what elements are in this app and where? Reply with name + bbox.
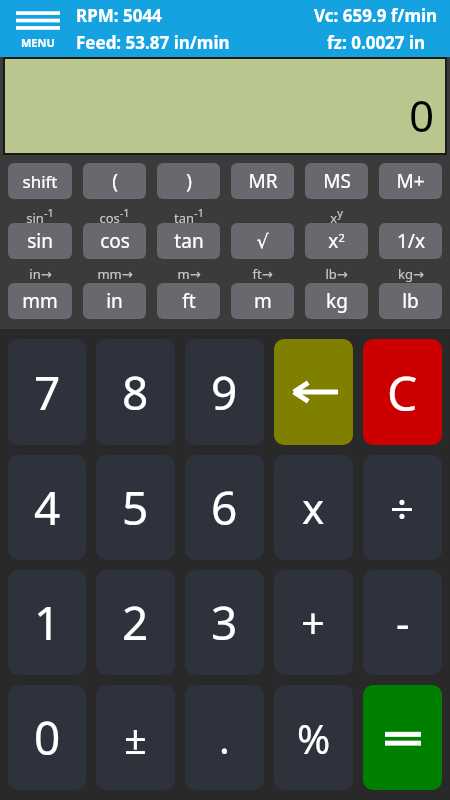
staticText: cos bbox=[100, 228, 130, 254]
staticText: shift bbox=[22, 170, 58, 193]
button[interactable]: in bbox=[83, 283, 146, 319]
button[interactable]: M+ bbox=[379, 163, 442, 199]
staticText: lb bbox=[402, 288, 419, 314]
staticText: M+ bbox=[396, 168, 425, 194]
button[interactable]: x2 bbox=[305, 223, 368, 259]
staticText: 7 bbox=[34, 361, 61, 424]
button[interactable]: cos bbox=[83, 223, 146, 259]
button[interactable]: ft bbox=[157, 283, 220, 319]
staticText: tan bbox=[174, 228, 204, 254]
button[interactable]: ÷ bbox=[363, 455, 442, 560]
staticText: RPM: 5044 bbox=[76, 4, 162, 27]
button[interactable]: 5 bbox=[96, 455, 175, 560]
staticText: sin bbox=[27, 228, 53, 254]
staticText: 0 bbox=[409, 85, 435, 145]
staticText: mm bbox=[22, 288, 58, 314]
button[interactable]: 0 bbox=[8, 685, 86, 790]
button[interactable]: 2 bbox=[96, 570, 175, 675]
button[interactable]: lb bbox=[379, 283, 442, 319]
staticText: x2 bbox=[328, 228, 345, 254]
button[interactable]: mm bbox=[8, 283, 72, 319]
button[interactable]: 7 bbox=[8, 339, 86, 445]
staticText: xy bbox=[330, 205, 343, 223]
button[interactable]: C bbox=[363, 339, 442, 445]
staticText: 9 bbox=[211, 361, 238, 424]
staticText: 6 bbox=[211, 476, 238, 539]
staticText: 3 bbox=[211, 591, 238, 654]
button[interactable]: 1 bbox=[8, 570, 86, 675]
staticText: + bbox=[301, 594, 326, 651]
staticText: fz: 0.0027 in bbox=[327, 31, 426, 54]
button[interactable]: tan bbox=[157, 223, 220, 259]
button[interactable]: ± bbox=[96, 685, 175, 790]
staticText: ft bbox=[182, 288, 196, 314]
staticText: Vc: 659.9 f/min bbox=[314, 4, 438, 27]
button[interactable]: ( bbox=[83, 163, 146, 199]
staticText: MENU bbox=[21, 35, 55, 50]
button[interactable]: ) bbox=[157, 163, 220, 199]
staticText: ± bbox=[124, 711, 147, 765]
button[interactable]: 1/x bbox=[379, 223, 442, 259]
staticText: 4 bbox=[34, 476, 61, 539]
button[interactable]: 4 bbox=[8, 455, 86, 560]
staticText: - bbox=[396, 594, 410, 651]
staticText: in bbox=[106, 288, 123, 314]
staticText: 0 bbox=[34, 706, 61, 769]
staticText: lb→ bbox=[325, 265, 348, 283]
button[interactable]: MR bbox=[231, 163, 294, 199]
staticText: m→ bbox=[177, 265, 201, 283]
staticText: m bbox=[254, 288, 272, 314]
staticText: 8 bbox=[122, 361, 149, 424]
staticText: 2 bbox=[122, 591, 149, 654]
staticText: . bbox=[219, 711, 230, 765]
staticText: 5 bbox=[122, 476, 149, 539]
staticText: cos-1 bbox=[99, 205, 130, 223]
staticText: % bbox=[297, 711, 331, 765]
staticText: x bbox=[302, 479, 325, 536]
button[interactable]: Menu bbox=[10, 3, 66, 55]
button[interactable]: Equals bbox=[363, 685, 442, 790]
button[interactable]: √ bbox=[231, 223, 294, 259]
button[interactable]: 3 bbox=[185, 570, 264, 675]
button[interactable]: Backspace bbox=[274, 339, 353, 445]
staticText: ÷ bbox=[390, 479, 415, 536]
button[interactable]: . bbox=[185, 685, 264, 790]
staticText: ( bbox=[112, 168, 118, 194]
staticText: in→ bbox=[29, 265, 52, 283]
staticText: 1 bbox=[34, 591, 61, 654]
button[interactable]: MS bbox=[305, 163, 368, 199]
staticText: mm→ bbox=[97, 265, 133, 283]
staticText: 1/x bbox=[397, 228, 425, 254]
button[interactable]: 9 bbox=[185, 339, 264, 445]
staticText: sin-1 bbox=[26, 205, 54, 223]
staticText: MS bbox=[323, 168, 351, 194]
button[interactable]: kg bbox=[305, 283, 368, 319]
staticText: √ bbox=[256, 230, 269, 252]
staticText: kg bbox=[326, 288, 348, 314]
staticText: MR bbox=[248, 168, 278, 194]
button[interactable]: + bbox=[274, 570, 353, 675]
staticText: ) bbox=[186, 168, 192, 194]
button[interactable]: % bbox=[274, 685, 353, 790]
button[interactable]: 8 bbox=[96, 339, 175, 445]
staticText: ft→ bbox=[252, 265, 273, 283]
staticText: kg→ bbox=[398, 265, 424, 283]
button[interactable]: x bbox=[274, 455, 353, 560]
button[interactable]: sin bbox=[8, 223, 72, 259]
button[interactable]: shift bbox=[8, 163, 72, 199]
button[interactable]: - bbox=[363, 570, 442, 675]
staticText: tan-1 bbox=[174, 205, 204, 223]
button[interactable]: 6 bbox=[185, 455, 264, 560]
button[interactable]: m bbox=[231, 283, 294, 319]
staticText: C bbox=[387, 360, 418, 425]
staticText: Feed: 53.87 in/min bbox=[76, 31, 230, 54]
